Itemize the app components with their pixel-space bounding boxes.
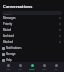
button[interactable]: Calls [16, 62, 24, 72]
button[interactable]: Muted [0, 27, 64, 33]
button[interactable]: Blocked [0, 39, 64, 45]
staticText: Notifications [6, 46, 22, 50]
staticText: Search [4, 12, 12, 15]
button[interactable]: Help [0, 57, 64, 63]
staticText: Help [6, 58, 12, 62]
staticText: Muted [3, 28, 12, 32]
button[interactable]: Priority [0, 21, 64, 27]
button[interactable]: Status [28, 62, 36, 72]
button[interactable]: You [52, 62, 60, 72]
button[interactable]: Storage [0, 51, 64, 57]
staticText: You [54, 68, 58, 70]
staticText: Archived [3, 34, 14, 38]
staticText: Status [29, 68, 35, 70]
button[interactable]: Tools [40, 62, 48, 72]
button[interactable]: Notifications [0, 45, 64, 51]
staticText: Conversations [3, 4, 33, 10]
button[interactable]: Search [2, 11, 62, 15]
staticText: Calls [18, 68, 22, 70]
button[interactable]: Messages [0, 15, 64, 21]
staticText: Chats [6, 68, 11, 70]
staticText: Tools [42, 68, 47, 70]
staticText: Messages [3, 16, 16, 20]
button[interactable]: Archived [0, 33, 64, 39]
staticText: Blocked [3, 40, 13, 44]
button[interactable]: Chats [4, 62, 12, 72]
staticText: Storage [6, 52, 16, 56]
staticText: Priority [3, 22, 13, 26]
